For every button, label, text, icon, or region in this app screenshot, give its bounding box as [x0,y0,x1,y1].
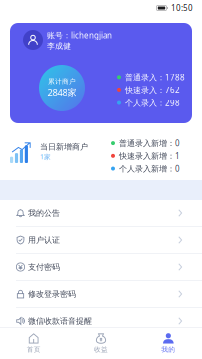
staticText: 收益 [94,345,108,354]
staticText: 李成健 [47,41,71,51]
staticText: 10:50 [171,3,193,13]
button[interactable]: 修改登录密码 [0,281,202,308]
staticText: 我的 [161,345,175,354]
staticText: 用户认证 [28,235,60,245]
staticText: 累计商户 [48,77,76,86]
staticText: 账号：lichengjian [47,30,112,41]
staticText: 1家 [40,152,51,161]
staticText: 我的公告 [28,208,60,218]
button[interactable]: 首页 [0,327,67,359]
staticText: 个人录入新增：0 [119,163,180,174]
button[interactable]: 微信收款语音提醒 [0,308,202,335]
button[interactable]: 我的公告 [0,200,202,227]
staticText: 支付密码 [28,262,60,272]
staticText: 快速录入：762 [125,85,180,95]
staticText: 普通录入新增：0 [119,138,180,148]
button[interactable]: 我的 [135,327,202,359]
staticText: 首页 [27,345,41,354]
staticText: 微信收款语音提醒 [28,316,92,326]
button[interactable]: 收益 [67,327,135,359]
button[interactable]: 用户认证 [0,227,202,254]
staticText: 当日新增商户 [40,142,88,152]
staticText: 2848家 [47,86,76,98]
staticText: 普通录入：1788 [125,72,185,83]
staticText: 快速录入新增：1 [119,150,180,161]
staticText: 个人录入：298 [125,97,180,108]
button[interactable]: 支付密码 [0,254,202,281]
staticText: 修改登录密码 [28,289,76,299]
